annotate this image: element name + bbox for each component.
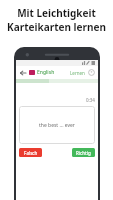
button[interactable]: Back — [19, 69, 27, 77]
staticText: the best ... ever — [39, 122, 75, 129]
button[interactable]: Profile — [88, 69, 95, 76]
staticText: Richtig — [76, 150, 91, 156]
button[interactable]: Lernen — [70, 70, 85, 76]
staticText: Karteikarten lernen — [7, 20, 106, 34]
button[interactable]: Falsch — [19, 148, 42, 157]
button[interactable]: the best ... ever — [19, 106, 95, 144]
button[interactable]: English — [29, 69, 55, 76]
staticText: English — [37, 69, 55, 76]
staticText: 0:34 — [86, 97, 95, 103]
button[interactable]: Richtig — [72, 148, 95, 157]
staticText: Mit Leichtigkeit — [17, 6, 96, 20]
staticText: Falsch — [24, 150, 38, 156]
